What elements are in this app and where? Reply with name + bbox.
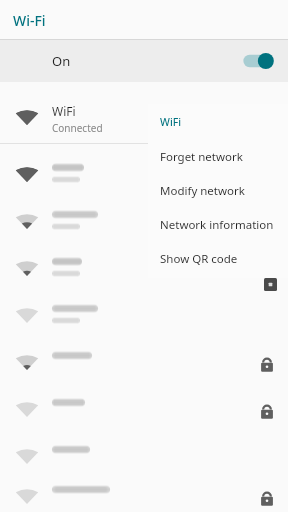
staticText: Show QR code [160, 251, 238, 267]
staticText: Network information [160, 217, 274, 233]
staticText: WiFi [160, 115, 182, 129]
button[interactable] [0, 293, 288, 340]
staticText: WiFi [52, 103, 76, 119]
button[interactable] [0, 199, 288, 246]
staticText: Connected [52, 121, 103, 135]
other: Secured network [258, 489, 276, 507]
other: Secured network [258, 261, 276, 279]
other: Secured network [264, 278, 277, 291]
button[interactable] [0, 152, 288, 199]
staticText: Modify network [160, 183, 245, 199]
staticText: Forget network [160, 149, 243, 165]
button[interactable]: Secured network [0, 340, 288, 387]
button[interactable]: On [0, 40, 288, 82]
button[interactable]: Forget network [148, 140, 288, 174]
other: Secured network [258, 402, 276, 420]
button[interactable]: Secured network [0, 246, 288, 293]
button[interactable]: Show QR code [148, 242, 288, 276]
staticText: On [52, 52, 71, 70]
button[interactable]: Secured network [0, 387, 288, 434]
staticText: Wi-Fi [13, 11, 46, 30]
button[interactable]: WiFi [0, 95, 288, 142]
button[interactable]: Network information [148, 208, 288, 242]
button[interactable]: Modify network [148, 174, 288, 208]
button[interactable]: Secured network [0, 474, 288, 512]
button[interactable] [0, 434, 288, 481]
other: Secured network [258, 355, 276, 373]
